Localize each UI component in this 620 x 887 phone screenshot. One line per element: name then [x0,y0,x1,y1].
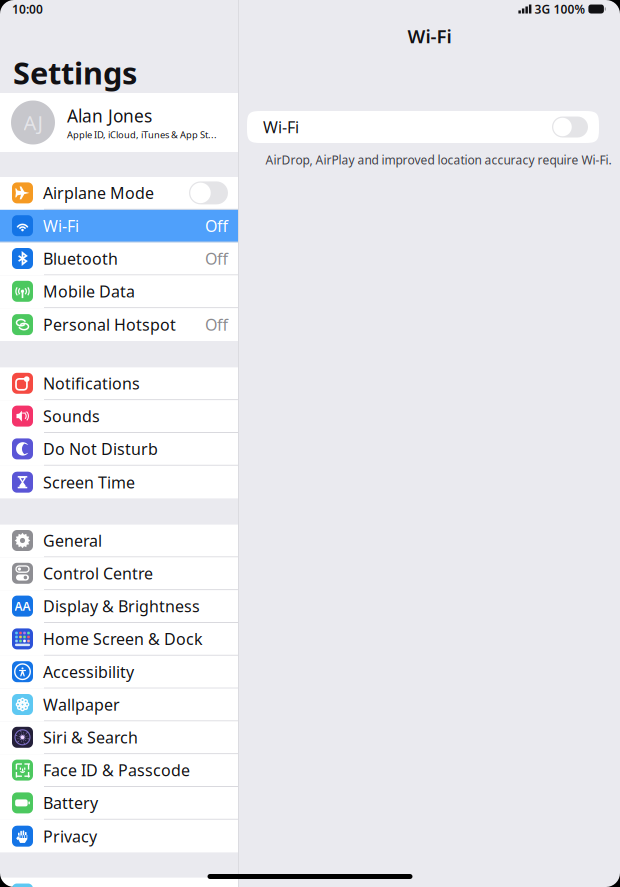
staticText: AA [14,598,30,614]
staticText: Alan Jones [67,104,152,127]
button[interactable]: Personal Hotspot [0,308,238,341]
staticText: Off [205,248,228,269]
staticText: Display & Brightness [43,595,200,617]
staticText: Apple ID, iCloud, iTunes & App St... [67,128,217,141]
staticText: 3G 100% [534,1,585,17]
staticText: Wi-Fi [43,215,79,236]
staticText: Home Screen & Dock [43,628,203,649]
button[interactable]: Siri & Search [0,721,238,754]
staticText: Off [205,314,228,335]
button[interactable]: Accessibility [0,656,238,689]
button[interactable]: Control Centre [0,557,238,590]
button[interactable]: Home Screen & Dock [0,623,238,656]
staticText: Wi-Fi [263,116,299,138]
staticText: Personal Hotspot [43,314,176,335]
button[interactable]: Bluetooth [0,243,238,275]
button[interactable]: Privacy [0,820,238,853]
staticText: Mobile Data [43,281,135,302]
staticText: Sounds [43,405,100,427]
staticText: Privacy [43,826,97,847]
staticText: Bluetooth [43,248,118,269]
staticText: Wi-Fi [407,24,451,48]
button[interactable]: Sounds [0,400,238,433]
button[interactable]: Wi-Fi [0,210,238,243]
staticText: AJ [23,109,42,136]
button[interactable]: iTunes & App Store [0,878,238,887]
staticText: Settings [13,52,137,93]
staticText: Control Centre [43,563,153,584]
staticText: Airplane Mode [43,182,154,203]
button[interactable]: Airplane Mode [0,177,238,210]
button[interactable]: Notifications [0,367,238,400]
staticText: Do Not Disturb [43,438,158,459]
staticText: Notifications [43,373,140,394]
staticText: Off [205,215,228,236]
staticText: 10:00 [12,1,43,17]
staticText: Face ID & Passcode [43,759,190,781]
staticText: Wallpaper [43,694,120,715]
staticText: Siri & Search [43,727,138,748]
button[interactable]: Face ID & Passcode [0,754,238,787]
staticText: Accessibility [43,661,134,682]
staticText: Screen Time [43,472,135,493]
staticText: AirDrop, AirPlay and improved location a… [265,152,611,168]
button[interactable]: Wallpaper [0,689,238,721]
staticText: General [43,530,102,551]
button[interactable]: AA [0,590,238,623]
button[interactable]: Do Not Disturb [0,433,238,466]
button[interactable]: Battery [0,787,238,820]
staticText: Battery [43,792,98,813]
button[interactable]: Mobile Data [0,275,238,308]
button[interactable]: AJ [0,93,238,152]
button[interactable]: Screen Time [0,466,238,499]
button[interactable]: General [0,525,238,557]
